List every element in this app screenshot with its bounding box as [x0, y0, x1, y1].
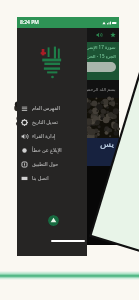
other: Audio [96, 32, 102, 38]
staticText: إدارة القراء [32, 133, 56, 140]
staticText: الجزء 15 - الحزب 29 [77, 53, 116, 59]
staticText: يس [100, 139, 114, 149]
button[interactable]: WhatsApp [48, 215, 59, 226]
button[interactable]: الفهرس العام [17, 101, 87, 115]
button[interactable]: تعديل التاريخ [17, 115, 87, 129]
staticText: تعديل التاريخ [32, 119, 58, 126]
staticText: حول التطبيق [32, 161, 59, 168]
staticText: الفهرس العام [32, 105, 60, 112]
button[interactable]: اختر طريقة العرض [20, 62, 116, 72]
button[interactable]: إدارة القراء [17, 129, 87, 143]
staticText: الإبلاغ عن خطأ [32, 147, 62, 154]
button[interactable]: الإبلاغ عن خطأ [17, 143, 87, 157]
other: Bookmark [110, 32, 116, 38]
staticText: 8:24 PM [20, 19, 39, 26]
staticText: اتصل بنا [32, 175, 49, 182]
button[interactable]: اتصل بنا [17, 171, 87, 185]
staticText: سورة 17 الإسراء [84, 44, 116, 50]
button[interactable]: حول التطبيق [17, 157, 87, 171]
staticText: بسم الله الرحمن الرحيم [71, 86, 116, 92]
staticText: اختر طريقة العرض [52, 65, 84, 70]
